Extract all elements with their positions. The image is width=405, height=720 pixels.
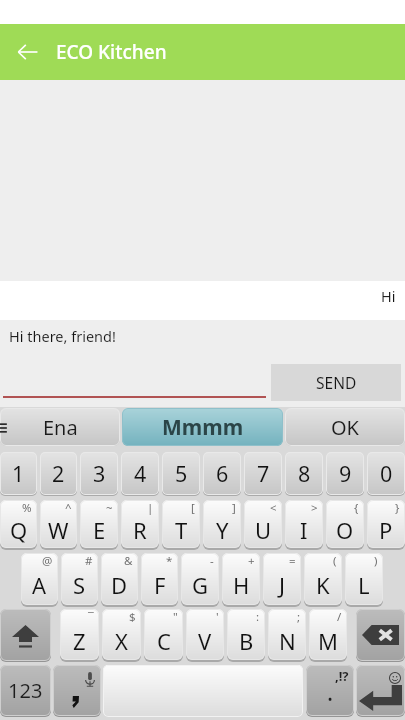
staticText: H: [233, 570, 250, 600]
staticText: $: [129, 609, 136, 625]
staticText: R: [133, 515, 147, 545]
staticText: ': [216, 609, 219, 625]
staticText: ~: [106, 500, 113, 516]
staticText: Hi there, friend!: [9, 326, 116, 346]
button[interactable]: Ena: [0, 408, 120, 446]
button[interactable]: ^: [40, 500, 77, 548]
button[interactable]: SEND: [271, 364, 401, 401]
button[interactable]: Shift: [0, 609, 51, 661]
button[interactable]: ': [186, 609, 224, 660]
button[interactable]: -: [181, 553, 219, 605]
staticText: O: [336, 515, 354, 545]
button[interactable]: *: [141, 553, 178, 605]
staticText: P: [379, 515, 393, 545]
button[interactable]: 3: [80, 452, 118, 495]
staticText: %: [22, 500, 32, 516]
staticText: L: [358, 570, 370, 600]
button[interactable]: ~: [80, 500, 118, 548]
staticText: ‾: [88, 609, 94, 625]
staticText: Y: [216, 515, 229, 545]
button[interactable]: &: [101, 553, 138, 605]
staticText: [: [191, 500, 195, 516]
staticText: OK: [331, 414, 359, 441]
button[interactable]: ): [345, 553, 383, 605]
button[interactable]: 1: [0, 452, 37, 495]
button[interactable]: Backspace: [356, 609, 405, 661]
button[interactable]: >: [285, 500, 323, 548]
staticText: }: [395, 500, 400, 516]
button[interactable]: 6: [203, 452, 241, 495]
button[interactable]: #: [61, 553, 98, 605]
button[interactable]: }: [367, 500, 405, 548]
button[interactable]: <: [244, 500, 282, 548]
staticText: =: [289, 553, 296, 569]
staticText: B: [239, 626, 254, 656]
staticText: Q: [10, 515, 28, 545]
staticText: I: [300, 515, 308, 545]
button[interactable]: Comma, voice input: [53, 665, 101, 716]
button[interactable]: 2: [40, 452, 77, 495]
button[interactable]: 9: [326, 452, 364, 495]
staticText: 7: [257, 459, 270, 488]
button[interactable]: 7: [244, 452, 282, 495]
staticText: {: [354, 500, 359, 516]
staticText: 1: [12, 459, 25, 488]
staticText: F: [154, 570, 166, 600]
staticText: 6: [216, 459, 229, 488]
button[interactable]: Numbers: [0, 665, 51, 716]
button[interactable]: [: [162, 500, 200, 548]
staticText: T: [175, 515, 188, 545]
staticText: ,!?: [335, 667, 349, 685]
staticText: 9: [339, 459, 352, 488]
button[interactable]: 0: [367, 452, 405, 495]
staticText: ;: [297, 609, 301, 625]
staticText: J: [279, 570, 286, 600]
staticText: 4: [134, 459, 147, 488]
button[interactable]: ;: [268, 609, 306, 660]
button[interactable]: OK: [285, 408, 405, 446]
staticText: @: [42, 553, 53, 569]
button[interactable]: @: [21, 553, 58, 605]
button[interactable]: Enter: [356, 665, 405, 716]
button[interactable]: 4: [121, 452, 159, 495]
staticText: A: [32, 570, 47, 600]
button[interactable]: ‾: [60, 609, 99, 660]
staticText: ECO Kitchen: [56, 39, 167, 65]
staticText: -: [210, 553, 214, 569]
button[interactable]: |: [121, 500, 159, 548]
staticText: 3: [93, 459, 106, 488]
button[interactable]: $: [102, 609, 141, 660]
staticText: X: [115, 626, 128, 656]
button[interactable]: Space: [103, 665, 303, 717]
staticText: #: [85, 553, 93, 569]
button[interactable]: Period: [306, 665, 354, 716]
staticText: M: [318, 626, 338, 656]
button[interactable]: Mmmm: [122, 408, 283, 446]
staticText: 5: [175, 459, 188, 488]
button[interactable]: /: [309, 609, 347, 660]
staticText: ": [173, 609, 178, 625]
staticText: V: [198, 626, 212, 656]
button[interactable]: +: [222, 553, 260, 605]
staticText: <: [270, 500, 277, 516]
staticText: G: [192, 570, 209, 600]
staticText: 2: [52, 459, 65, 488]
staticText: Mmmm: [162, 413, 244, 442]
staticText: U: [255, 515, 272, 545]
button[interactable]: ": [144, 609, 183, 660]
button[interactable]: Back: [0, 24, 56, 80]
button[interactable]: %: [0, 500, 37, 548]
button[interactable]: (: [304, 553, 342, 605]
button[interactable]: 5: [162, 452, 200, 495]
staticText: W: [48, 515, 69, 545]
staticText: 123: [8, 677, 43, 704]
button[interactable]: :: [227, 609, 265, 660]
button[interactable]: =: [263, 553, 301, 605]
button[interactable]: 8: [285, 452, 323, 495]
staticText: Z: [73, 626, 86, 656]
staticText: +: [248, 553, 255, 569]
staticText: •: [328, 691, 333, 706]
staticText: Hi: [381, 286, 396, 306]
button[interactable]: ]: [203, 500, 241, 548]
button[interactable]: {: [326, 500, 364, 548]
